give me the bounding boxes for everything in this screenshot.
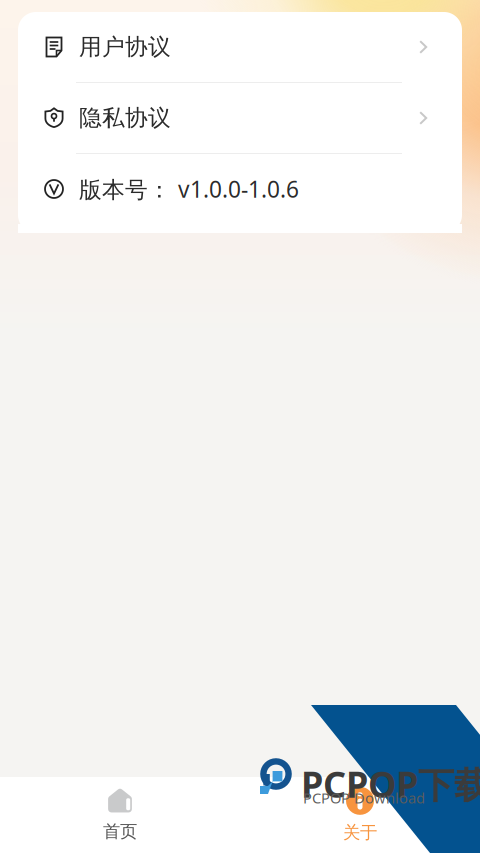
button[interactable]: 关于 — [240, 777, 480, 853]
staticText: 首页 — [103, 821, 137, 842]
button[interactable]: 首页 — [0, 777, 240, 853]
staticText: 用户协议 — [79, 33, 171, 61]
button[interactable]: 用户协议 — [18, 12, 462, 82]
button[interactable]: 隐私协议 — [18, 83, 462, 153]
staticText: PCPOP Download — [303, 788, 425, 807]
staticText: 版本号： v1.0.0-1.0.6 — [79, 174, 299, 204]
staticText: PCPOP下载 — [301, 760, 480, 808]
staticText: 隐私协议 — [79, 104, 171, 132]
button[interactable]: 版本号： v1.0.0-1.0.6 — [18, 154, 462, 224]
staticText: 关于 — [343, 822, 377, 843]
